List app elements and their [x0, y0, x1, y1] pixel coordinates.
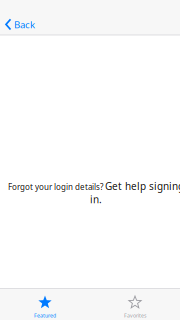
- button[interactable]: Favorites: [90, 288, 180, 320]
- staticText: Back: [14, 18, 35, 31]
- staticText: Forgot your login details? Get help sign…: [8, 179, 180, 206]
- button[interactable]: Featured: [0, 288, 90, 320]
- staticText: Favorites: [124, 312, 146, 319]
- button[interactable]: Back: [0, 13, 60, 35]
- staticText: Featured: [34, 312, 56, 319]
